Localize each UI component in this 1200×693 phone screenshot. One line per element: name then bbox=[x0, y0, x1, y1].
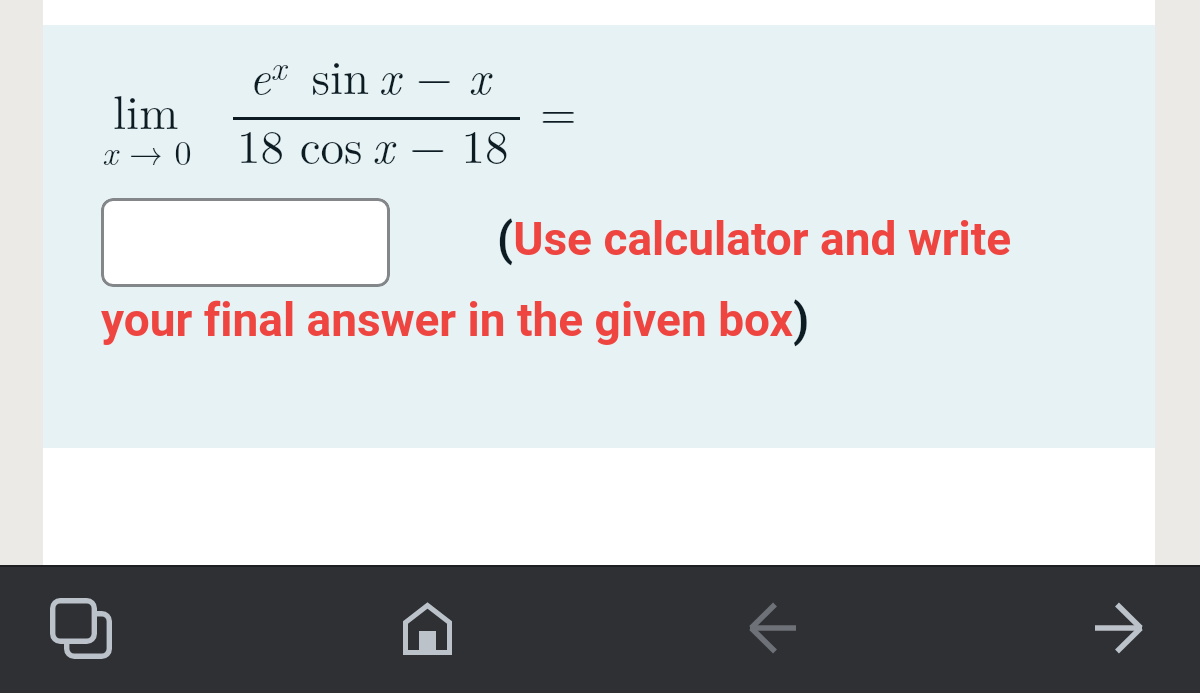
staticText: (Use calculator and write bbox=[497, 212, 1012, 266]
button[interactable]: Recent apps bbox=[40, 588, 120, 668]
staticText: x → 0 bbox=[102, 127, 192, 175]
staticText: 18 cos x − 18 bbox=[237, 110, 509, 177]
staticText: lim bbox=[113, 76, 179, 143]
button[interactable]: Answer input box bbox=[101, 198, 390, 287]
staticText: ex sin x − x bbox=[249, 41, 491, 108]
button[interactable]: Home bbox=[398, 598, 458, 658]
button[interactable]: Forward bbox=[1090, 601, 1150, 661]
button[interactable]: Back bbox=[745, 601, 805, 661]
staticText: = bbox=[540, 76, 577, 143]
staticText: your f‌inal answer in the given box) bbox=[101, 293, 810, 347]
